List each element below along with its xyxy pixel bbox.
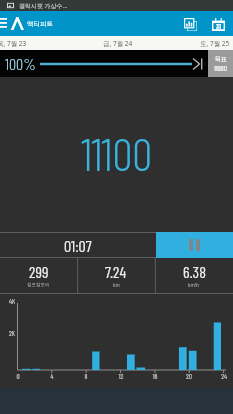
- staticText: 31: [216, 22, 221, 30]
- staticText: 01:07: [64, 236, 92, 255]
- button[interactable]: Pause: [156, 232, 233, 258]
- staticText: 100%: [5, 54, 36, 73]
- button[interactable]: 목, 7월 23: [0, 36, 51, 50]
- button[interactable]: Charts: [181, 15, 199, 33]
- button[interactable]: 7.24: [77, 258, 155, 294]
- staticText: 299: [29, 262, 49, 281]
- button[interactable]: 목표: [208, 50, 233, 77]
- button[interactable]: 6.38: [155, 258, 233, 294]
- button[interactable]: Navigation menu: [0, 11, 7, 36]
- staticText: 7.24: [105, 262, 127, 281]
- staticText: 액티피트: [27, 20, 53, 28]
- staticText: 11000: [214, 64, 227, 72]
- staticText: 20: [182, 372, 196, 380]
- button[interactable]: 금, 7월 24: [79, 36, 157, 50]
- staticText: 4: [45, 372, 59, 380]
- staticText: 24: [217, 372, 231, 380]
- staticText: 킬로칼로리: [27, 282, 50, 288]
- staticText: km: [113, 282, 120, 288]
- staticText: 목표: [215, 55, 227, 63]
- staticText: 16: [148, 372, 162, 380]
- staticText: 4K: [9, 297, 16, 305]
- staticText: km/h: [188, 282, 200, 288]
- staticText: 8: [79, 372, 93, 380]
- staticText: 6.38: [183, 262, 206, 281]
- staticText: 목, 7월 23: [0, 39, 27, 48]
- staticText: 금, 7월 24: [103, 39, 133, 48]
- staticText: 0: [11, 372, 25, 380]
- staticText: 11100: [81, 126, 153, 180]
- staticText: 토, 7월 25: [200, 39, 230, 48]
- button[interactable]: 토, 7월 25: [175, 36, 233, 50]
- button[interactable]: Calendar: [209, 15, 227, 33]
- staticText: 12: [114, 372, 128, 380]
- staticText: 2K: [9, 329, 15, 337]
- staticText: 갤럭시핏 가상수...: [19, 2, 68, 10]
- button[interactable]: 299: [0, 258, 77, 294]
